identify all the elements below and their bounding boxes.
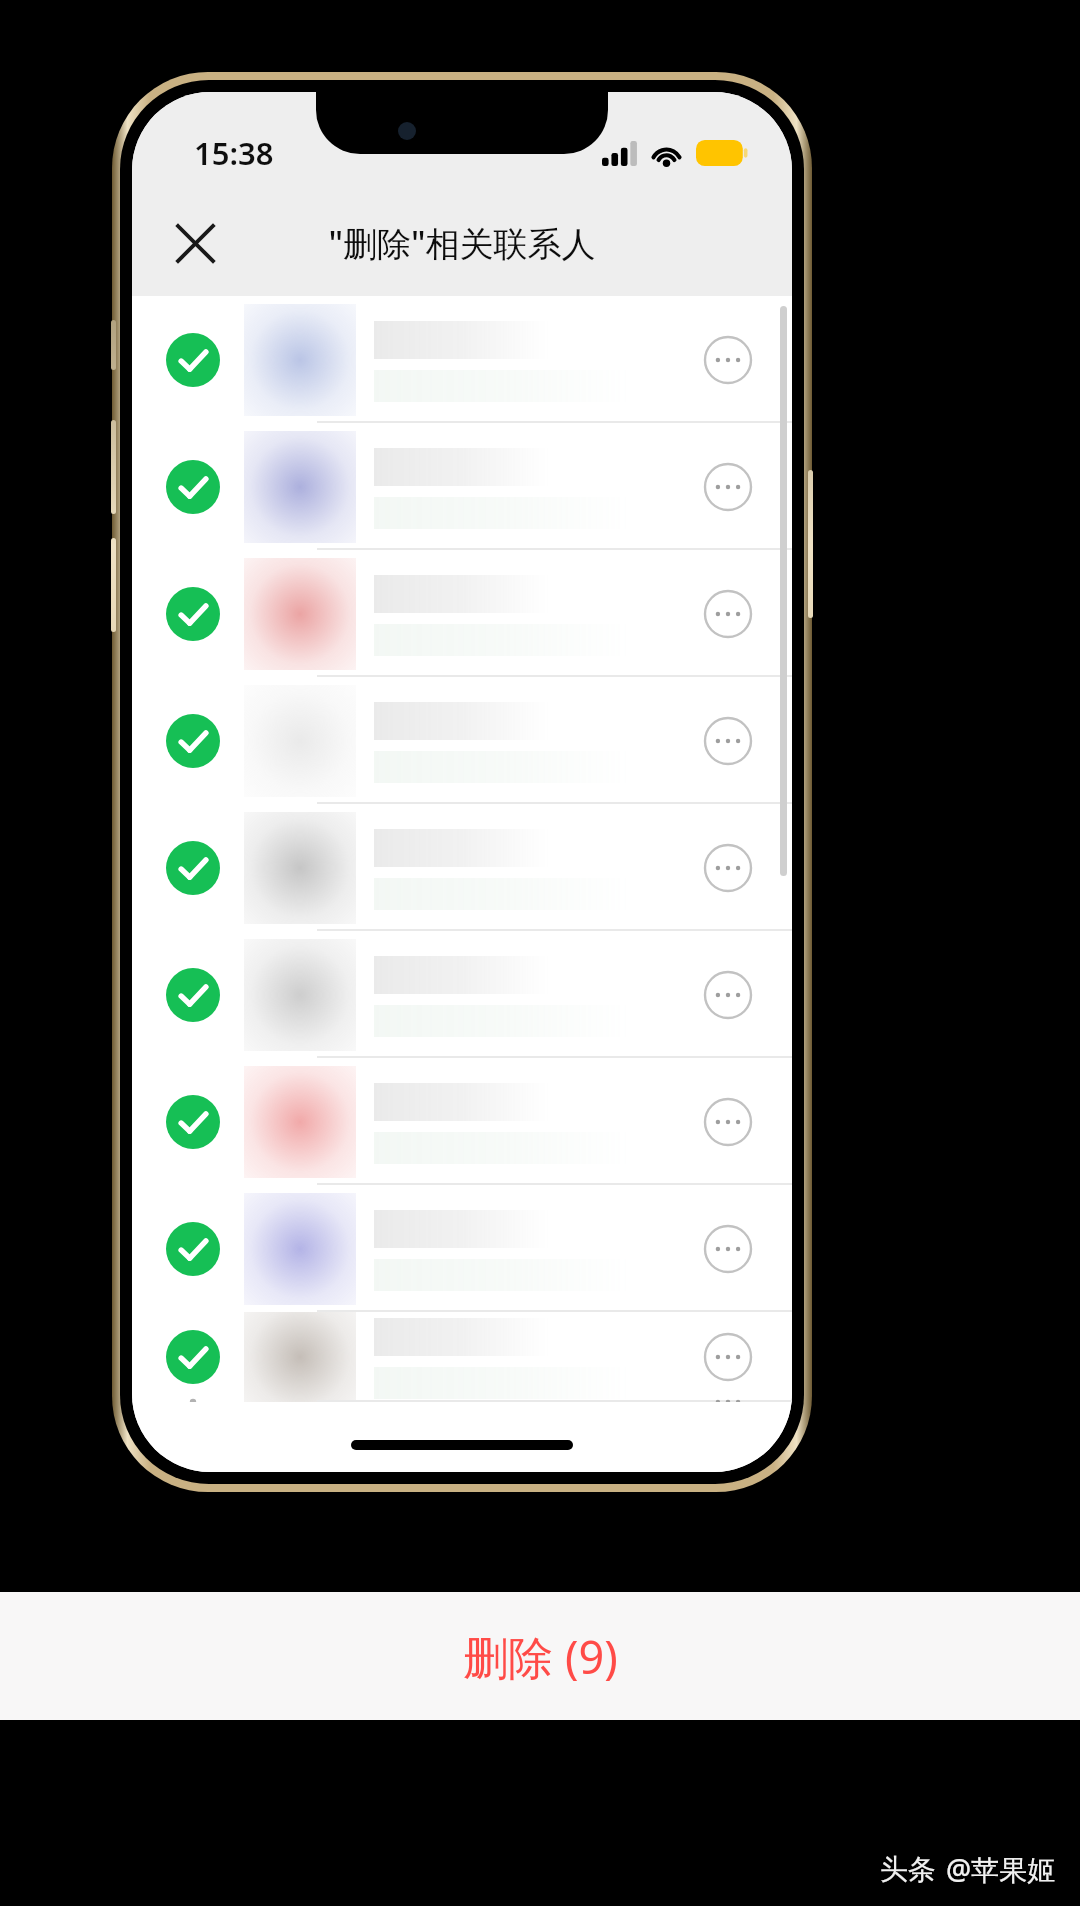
button[interactable]: More options: [696, 455, 760, 519]
button[interactable]: More options: [132, 296, 792, 423]
button[interactable]: More options: [696, 328, 760, 392]
button[interactable]: More options: [696, 1325, 760, 1389]
button[interactable]: More options: [696, 836, 760, 900]
button[interactable]: More options: [696, 582, 760, 646]
button[interactable]: More options: [132, 804, 792, 931]
button[interactable]: More options: [132, 1185, 792, 1312]
button[interactable]: More options: [696, 709, 760, 773]
staticText: 15:38: [194, 132, 274, 174]
button[interactable]: Close: [156, 204, 234, 282]
button[interactable]: More options: [132, 677, 792, 804]
button[interactable]: 删除 (9): [0, 1592, 1080, 1720]
button[interactable]: More options: [132, 1058, 792, 1185]
button[interactable]: More options: [696, 1217, 760, 1281]
button[interactable]: More options: [696, 963, 760, 1027]
button[interactable]: More options: [696, 1090, 760, 1154]
staticText: "删除"相关联系人: [328, 220, 596, 266]
staticText: 删除 (9): [463, 1626, 618, 1687]
button[interactable]: More options: [132, 550, 792, 677]
button[interactable]: More options: [132, 423, 792, 550]
button[interactable]: More options: [132, 931, 792, 1058]
button[interactable]: More options: [132, 1312, 792, 1402]
staticText: 头条: [880, 1852, 936, 1887]
staticText: @苹果姬: [946, 1850, 1056, 1888]
